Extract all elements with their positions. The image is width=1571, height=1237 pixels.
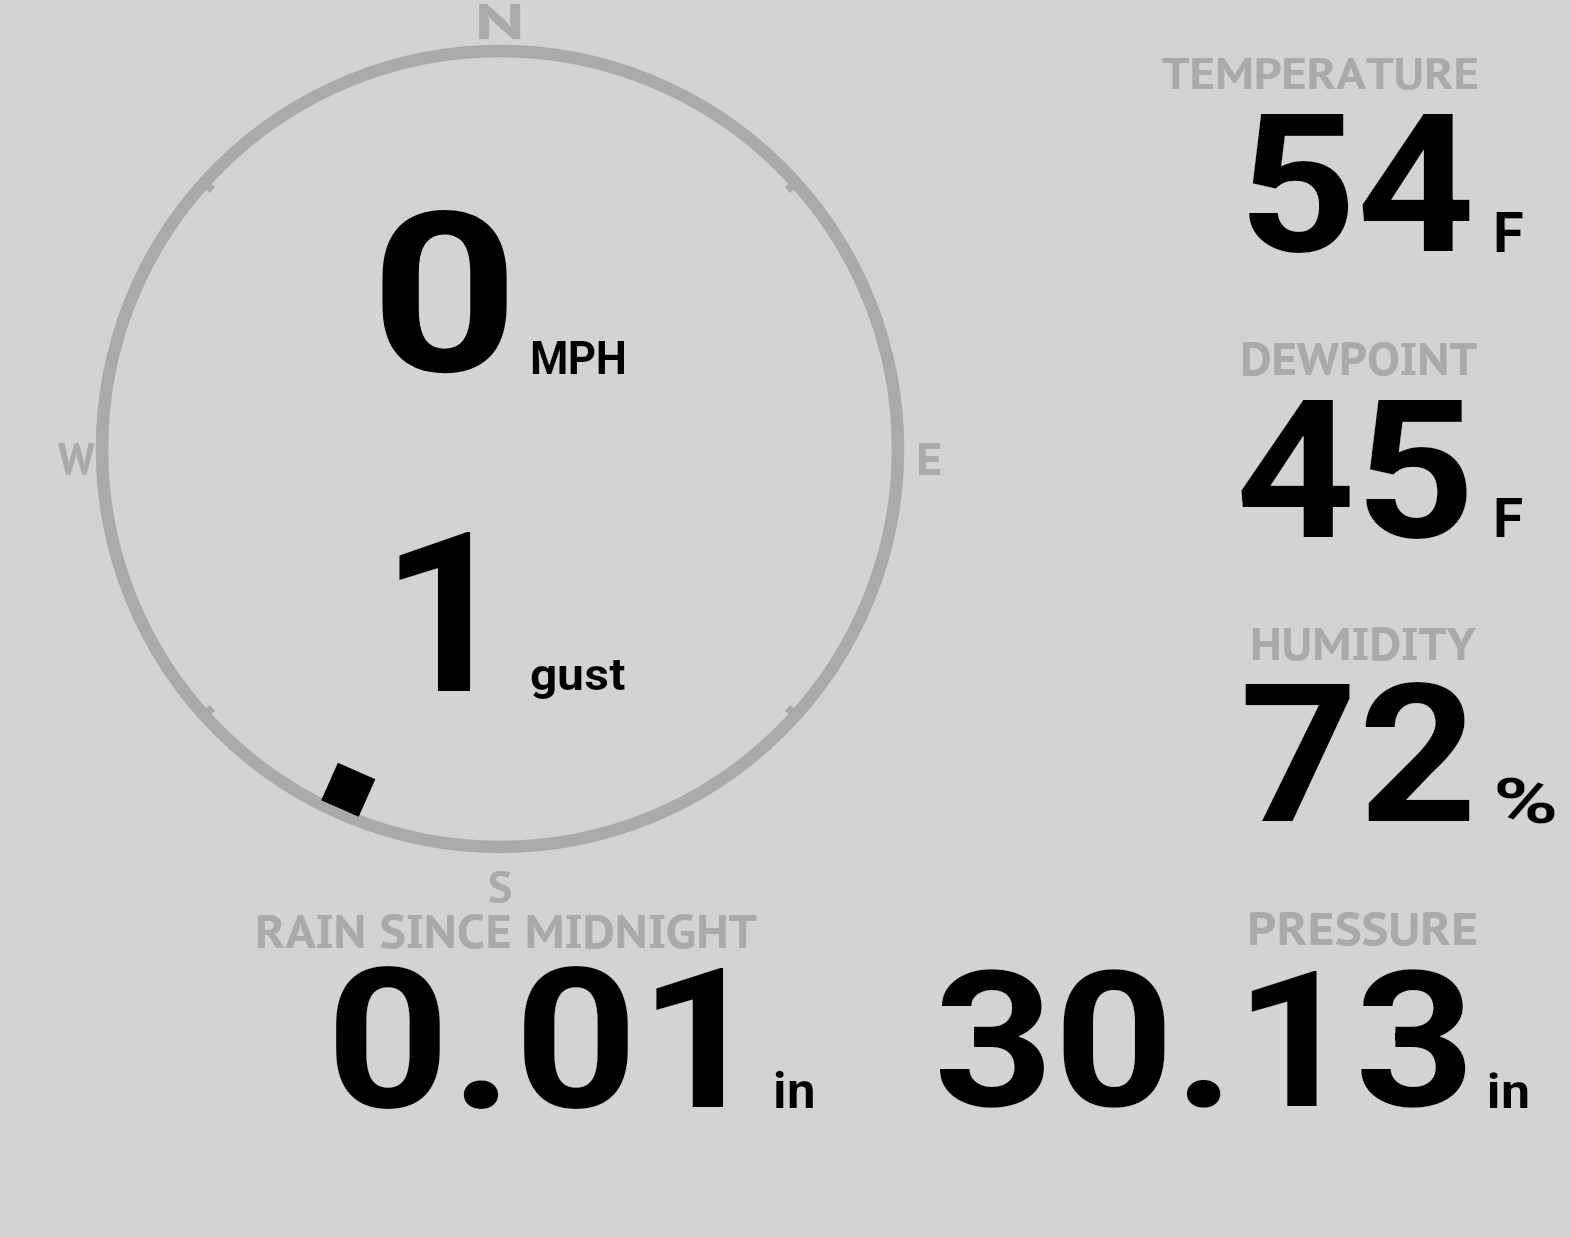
button[interactable]: Wind 0 MPH, gusting 1, from south-southw…	[96, 45, 908, 857]
button[interactable]: Humidity 72 percent	[1000, 600, 1560, 855]
button[interactable]: Rain since midnight 0.01 in	[240, 900, 840, 1125]
button[interactable]: Dewpoint 45 F	[1000, 315, 1560, 570]
button[interactable]: Temperature 54 F	[1000, 30, 1560, 285]
button[interactable]: Pressure 30.13 in	[920, 900, 1540, 1125]
